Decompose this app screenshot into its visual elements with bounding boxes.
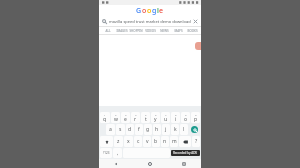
button[interactable]: c [134,136,142,147]
staticText: e [124,116,127,123]
button[interactable]: 1 [100,112,110,123]
button[interactable]: d [126,124,134,135]
staticText: 9 [185,113,187,116]
button[interactable]: 8 [171,112,180,123]
button[interactable]: 4 [131,112,140,123]
staticText: 7 [165,113,167,116]
staticText: o [142,6,147,16]
button[interactable]: b [152,136,160,147]
button[interactable]: 3 [121,112,130,123]
staticText: l [183,126,185,133]
button[interactable]: Recents [167,159,201,168]
button[interactable]: Clear [193,19,198,24]
staticText: u [164,116,168,123]
staticText: ? [195,138,198,145]
staticText: h [155,126,159,133]
staticText: 2 [115,113,117,116]
staticText: IMAGES [116,29,128,33]
staticText: m [172,138,177,145]
staticText: k [174,126,177,133]
button[interactable]: g [144,124,152,135]
button[interactable]: f [135,124,143,135]
button[interactable]: ? [192,136,200,147]
staticText: w [114,116,118,123]
staticText: v [146,138,149,145]
button[interactable]: NEWS [157,27,171,34]
staticText: MAPS [174,29,183,33]
staticText: y [154,116,157,123]
button[interactable]: ?123 [100,148,112,158]
staticText: 5 [145,113,147,116]
button[interactable]: a [106,124,115,135]
button[interactable]: j [162,124,170,135]
button[interactable]: v [143,136,151,147]
staticText: 4 [135,113,137,116]
staticText: n [163,138,167,145]
staticText: a [109,126,112,133]
button[interactable]: 5 [141,112,150,123]
staticText: l [157,6,159,16]
staticText: e [159,6,164,16]
button[interactable]: mozilla speed trust market demo download [99,17,201,26]
button[interactable]: 0 [191,112,200,123]
staticText: ?123 [103,151,110,155]
staticText: 6 [155,113,157,116]
staticText: g [152,6,157,16]
button[interactable]: ALL [101,27,115,34]
button[interactable]: BOOKS [185,27,199,34]
button[interactable]: VIDEOS [143,27,157,34]
staticText: 0 [195,113,197,116]
staticText: d [128,126,132,133]
button[interactable]: 6 [151,112,160,123]
staticText: b [154,138,158,145]
staticText: t [145,116,147,123]
button[interactable]: 9 [181,112,190,123]
button[interactable]: m [170,136,178,147]
button[interactable]: Back [99,159,133,168]
staticText: x [127,138,130,145]
button[interactable]: IMAGES [115,27,129,34]
button[interactable]: Shift [100,136,113,147]
staticText: G [136,6,142,16]
staticText: o [184,116,188,123]
staticText: q [103,116,107,123]
button[interactable]: x [124,136,133,147]
staticText: i [175,116,177,123]
button[interactable]: h [153,124,161,135]
button[interactable]: , [113,148,122,158]
button[interactable]: z [114,136,123,147]
button[interactable]: s [116,124,125,135]
staticText: SHOPPING [129,29,143,33]
button[interactable]: MAPS [171,27,185,34]
staticText: o [147,6,152,16]
staticText: VIDEOS [145,29,156,33]
button[interactable]: Search [189,124,200,135]
staticText: f [138,126,140,133]
staticText: Recorded by ADV [173,151,198,155]
staticText: z [117,138,120,145]
staticText: NEWS [160,29,169,33]
staticText: p [194,116,198,123]
staticText: , [117,150,119,157]
staticText: 8 [175,113,177,116]
staticText: g [146,126,150,133]
staticText: r [134,116,137,123]
button[interactable]: l [180,124,188,135]
button[interactable]: k [171,124,179,135]
staticText: mozilla speed trust market demo download [109,19,193,24]
button[interactable]: SHOPPING [129,27,143,34]
staticText: s [119,126,122,133]
button[interactable]: 7 [161,112,170,123]
button[interactable]: n [161,136,169,147]
staticText: c [137,138,140,145]
staticText: 1 [104,113,106,116]
staticText: j [165,126,167,133]
button[interactable]: Backspace [179,136,191,147]
button[interactable]: 2 [111,112,120,123]
staticText: 3 [125,113,127,116]
staticText: ALL [105,29,111,33]
staticText: BOOKS [187,29,198,33]
button[interactable]: Home [133,159,167,168]
